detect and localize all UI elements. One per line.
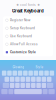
staticText: Allow Full Access — [10, 42, 38, 46]
button[interactable]: Customize Style — [3, 48, 53, 56]
button[interactable]: Register Now — [3, 16, 53, 24]
staticText: Style — [36, 65, 44, 69]
button[interactable]: Allow Full Access — [3, 40, 53, 48]
button[interactable]: Setup Keyboard — [3, 24, 53, 32]
staticText: Great Keyboard — [12, 8, 44, 14]
staticText: Setup Keyboard — [10, 26, 35, 30]
staticText: ★ cool fonts ★ — [16, 3, 40, 7]
staticText: Register Now — [10, 18, 30, 22]
staticText: Glowing — [12, 65, 24, 69]
button[interactable]: Use Keyboard — [3, 32, 53, 40]
staticText: Use Keyboard — [10, 34, 32, 38]
staticText: Customize Style — [10, 50, 36, 54]
